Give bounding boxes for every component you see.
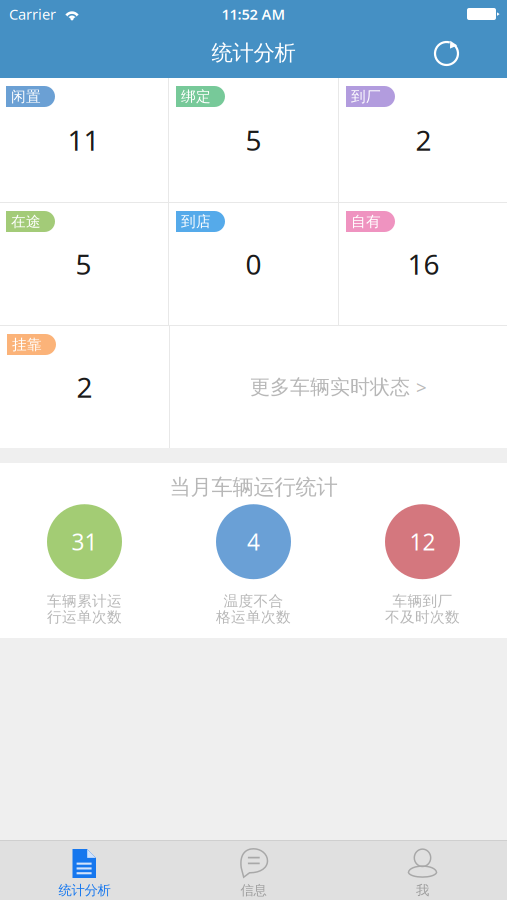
staticText: 更多车辆实时状态	[250, 375, 410, 399]
staticText: 闲置	[11, 87, 41, 105]
staticText: 我	[416, 882, 429, 898]
button[interactable]: 统计分析	[0, 841, 169, 900]
button[interactable]: 我	[338, 841, 507, 900]
staticText: 到店	[181, 212, 211, 230]
staticText: 在途	[11, 212, 41, 230]
staticText: 2	[76, 368, 92, 406]
staticText: 11:52 AM	[221, 4, 285, 24]
staticText: 11	[67, 121, 99, 159]
staticText: 温度不合	[223, 592, 283, 610]
staticText: 不及时次数	[385, 608, 460, 626]
button[interactable]: 刷新	[416, 28, 477, 78]
button[interactable]: 信息	[169, 841, 338, 900]
staticText: 5	[245, 121, 261, 159]
staticText: Carrier	[9, 4, 56, 24]
staticText: 绑定	[181, 87, 211, 105]
staticText: 12	[409, 527, 435, 557]
staticText: 16	[407, 245, 439, 283]
staticText: 行运单次数	[47, 608, 122, 626]
staticText: 车辆累计运	[47, 592, 122, 610]
staticText: 0	[245, 245, 261, 283]
staticText: 4	[247, 527, 260, 557]
staticText: 31	[71, 527, 97, 557]
staticText: 当月车辆运行统计	[169, 474, 337, 500]
staticText: >	[416, 375, 427, 399]
staticText: 车辆到厂	[392, 592, 452, 610]
button[interactable]: 更多车辆实时状态	[170, 326, 507, 448]
staticText: 统计分析	[211, 40, 295, 66]
staticText: 格运单次数	[216, 608, 291, 626]
staticText: 2	[415, 121, 431, 159]
staticText: 挂靠	[12, 335, 42, 353]
staticText: 统计分析	[58, 882, 110, 898]
staticText: 5	[75, 245, 91, 283]
staticText: 自有	[351, 212, 381, 230]
staticText: 到厂	[351, 87, 381, 105]
staticText: 信息	[240, 882, 266, 898]
